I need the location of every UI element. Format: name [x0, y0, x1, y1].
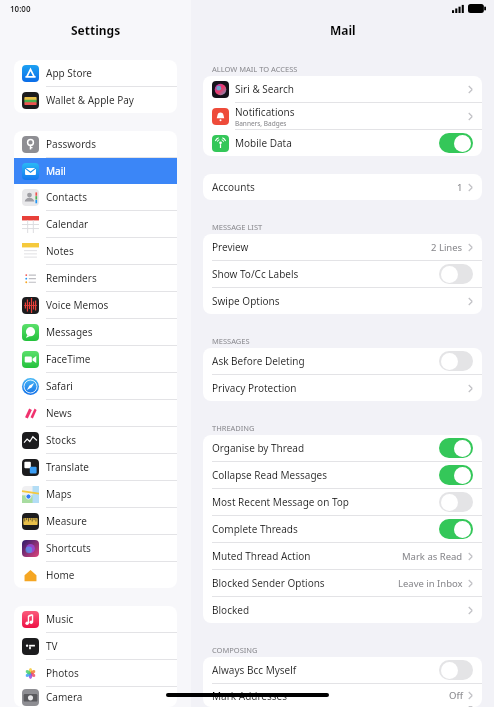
button[interactable]: Siri & Search — [203, 76, 482, 102]
staticText: Reminders — [46, 271, 97, 285]
button[interactable]: Organise by Thread — [203, 435, 482, 461]
button[interactable]: On — [439, 465, 473, 485]
staticText: Privacy Protection — [212, 381, 297, 395]
button[interactable]: FaceTime — [14, 346, 177, 372]
staticText: Show To/Cc Labels — [212, 267, 299, 281]
button[interactable]: Show To/Cc Labels — [203, 261, 482, 287]
staticText: Stocks — [46, 433, 77, 447]
staticText: Translate — [46, 460, 90, 474]
staticText: Leave in Inbox — [398, 577, 463, 590]
button[interactable]: Wallet & Apple Pay — [14, 87, 177, 113]
button[interactable]: Music — [14, 606, 177, 632]
staticText: Shortcuts — [46, 541, 91, 555]
staticText: Mail — [330, 22, 356, 38]
button[interactable]: Camera — [14, 687, 177, 707]
button[interactable]: Most Recent Message on Top — [203, 489, 482, 515]
staticText: Measure — [46, 514, 87, 528]
button[interactable]: Stocks — [14, 427, 177, 453]
button[interactable]: On — [439, 133, 473, 153]
staticText: News — [46, 406, 72, 420]
staticText: 2 Lines — [431, 241, 463, 254]
staticText: Mark as Read — [402, 550, 463, 563]
staticText: COMPOSING — [212, 645, 258, 655]
staticText: Wallet & Apple Pay — [46, 93, 134, 107]
button[interactable]: Preview — [203, 234, 482, 260]
button[interactable]: Off — [439, 660, 473, 680]
staticText: Off — [449, 689, 463, 702]
button[interactable]: Ask Before Deleting — [203, 348, 482, 374]
button[interactable]: Mark Addresses — [203, 684, 482, 707]
button[interactable]: On — [439, 519, 473, 539]
staticText: Swipe Options — [212, 294, 280, 308]
staticText: Photos — [46, 666, 79, 680]
button[interactable]: Messages — [14, 319, 177, 345]
button[interactable]: Off — [439, 351, 473, 371]
staticText: Messages — [46, 325, 93, 339]
button[interactable]: Mail — [14, 158, 177, 184]
staticText: MESSAGE LIST — [212, 222, 263, 232]
button[interactable]: Photos — [14, 660, 177, 686]
button[interactable]: Notes — [14, 238, 177, 264]
staticText: Home — [46, 568, 75, 582]
button[interactable]: Off — [439, 492, 473, 512]
button[interactable]: Measure — [14, 508, 177, 534]
button[interactable]: Collapse Read Messages — [203, 462, 482, 488]
staticText: Mobile Data — [235, 136, 292, 150]
button[interactable]: Off — [439, 264, 473, 284]
button[interactable]: Blocked Sender Options — [203, 570, 482, 596]
staticText: Blocked — [212, 603, 250, 617]
button[interactable]: Blocked — [203, 597, 482, 623]
staticText: Accounts — [212, 180, 255, 194]
staticText: Safari — [46, 379, 73, 393]
staticText: Organise by Thread — [212, 441, 305, 455]
staticText: Mail — [46, 164, 66, 178]
staticText: Passwords — [46, 137, 97, 151]
button[interactable]: Muted Thread Action — [203, 543, 482, 569]
staticText: Contacts — [46, 190, 87, 204]
staticText: Notes — [46, 244, 74, 258]
staticText: Banners, Badges — [235, 119, 287, 128]
staticText: Preview — [212, 240, 249, 254]
staticText: FaceTime — [46, 352, 91, 366]
staticText: Collapse Read Messages — [212, 468, 328, 482]
button[interactable]: Passwords — [14, 131, 177, 157]
button[interactable]: Reminders — [14, 265, 177, 291]
staticText: THREADING — [212, 423, 255, 433]
staticText: Notifications — [235, 105, 295, 119]
button[interactable]: App Store — [14, 60, 177, 86]
staticText: Music — [46, 612, 74, 626]
staticText: Most Recent Message on Top — [212, 495, 349, 509]
button[interactable]: Privacy Protection — [203, 375, 482, 401]
staticText: TV — [46, 639, 58, 653]
button[interactable]: News — [14, 400, 177, 426]
staticText: MESSAGES — [212, 336, 250, 346]
button[interactable]: Notifications — [203, 103, 482, 129]
staticText: Blocked Sender Options — [212, 576, 325, 590]
staticText: Mark Addresses — [212, 689, 288, 703]
staticText: Siri & Search — [235, 82, 294, 96]
button[interactable]: Always Bcc Myself — [203, 657, 482, 683]
button[interactable]: Shortcuts — [14, 535, 177, 561]
button[interactable]: Swipe Options — [203, 288, 482, 314]
button[interactable]: Safari — [14, 373, 177, 399]
staticText: Maps — [46, 487, 72, 501]
button[interactable]: Contacts — [14, 184, 177, 210]
button[interactable]: TV — [14, 633, 177, 659]
staticText: 10:00 — [10, 3, 31, 14]
staticText: Settings — [71, 22, 121, 38]
button[interactable]: Complete Threads — [203, 516, 482, 542]
staticText: 1 — [457, 181, 463, 194]
button[interactable]: Mobile Data — [203, 130, 482, 156]
button[interactable]: Accounts — [203, 174, 482, 200]
button[interactable]: Maps — [14, 481, 177, 507]
staticText: Complete Threads — [212, 522, 298, 536]
staticText: Calendar — [46, 217, 89, 231]
button[interactable]: Translate — [14, 454, 177, 480]
staticText: App Store — [46, 66, 93, 80]
button[interactable]: Calendar — [14, 211, 177, 237]
staticText: ALLOW MAIL TO ACCESS — [212, 64, 298, 74]
button[interactable]: On — [439, 438, 473, 458]
button[interactable]: Home — [14, 562, 177, 588]
staticText: Ask Before Deleting — [212, 354, 305, 368]
button[interactable]: Voice Memos — [14, 292, 177, 318]
